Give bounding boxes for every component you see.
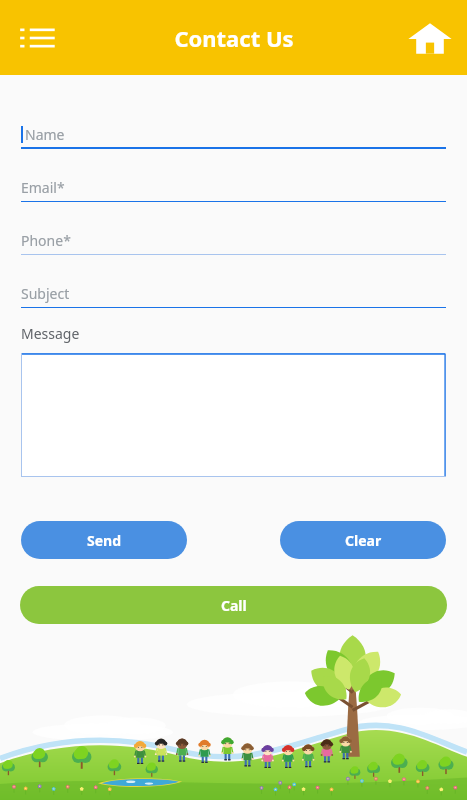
button[interactable] (22, 354, 445, 476)
button[interactable]: Name (21, 119, 446, 149)
staticText: Clear (345, 531, 382, 550)
button[interactable]: Phone* (21, 225, 446, 255)
button[interactable]: Call (20, 586, 447, 624)
button[interactable]: Home (407, 15, 453, 61)
button[interactable]: Send (21, 521, 187, 559)
staticText: Contact Us (174, 23, 294, 53)
button[interactable]: Email* (21, 172, 446, 202)
button[interactable]: Clear (280, 521, 446, 559)
staticText: Phone* (21, 231, 71, 250)
staticText: Message (21, 324, 80, 343)
staticText: Email* (21, 178, 65, 197)
button[interactable]: Menu (12, 14, 60, 62)
staticText: Call (221, 596, 247, 615)
button[interactable]: Subject (21, 278, 446, 308)
staticText: Subject (21, 284, 70, 303)
staticText: Name (25, 125, 65, 144)
staticText: Send (87, 531, 122, 550)
